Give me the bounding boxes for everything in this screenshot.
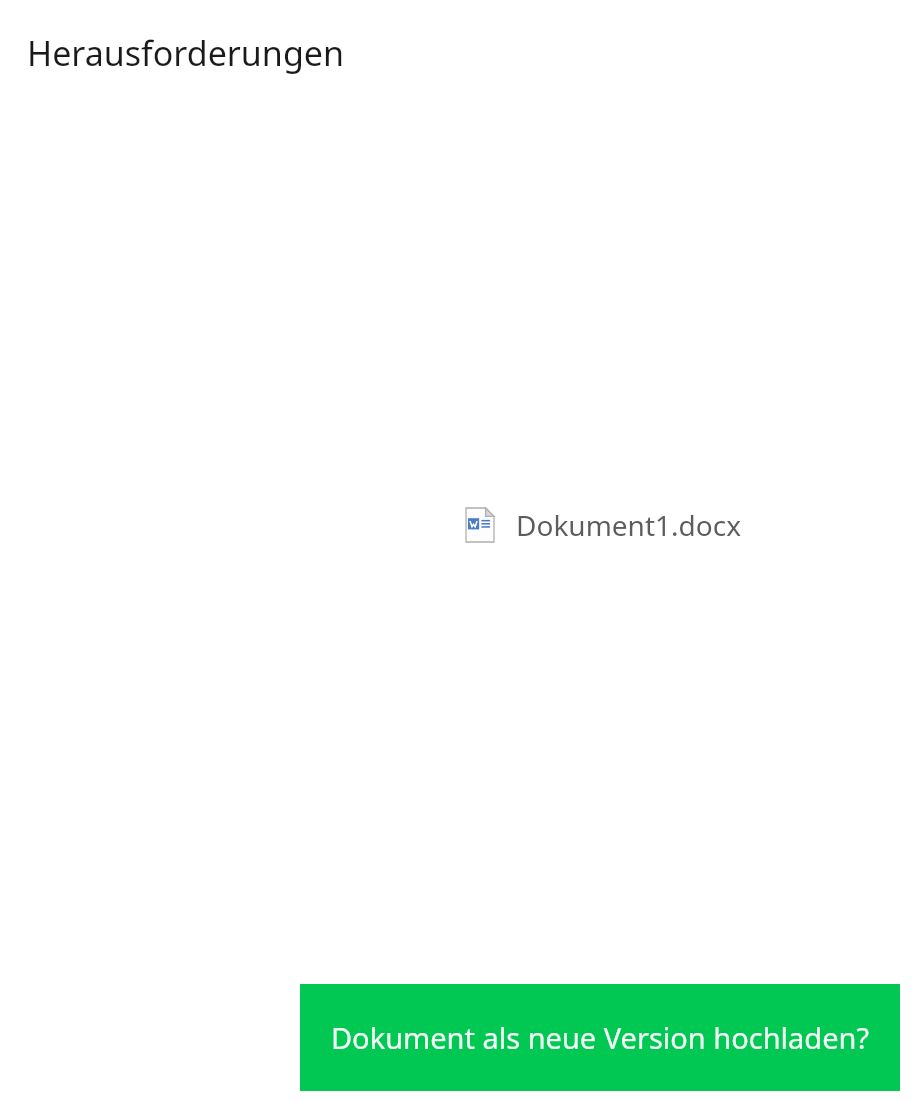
staticText: Dokument als neue Version hochladen? bbox=[300, 1018, 900, 1057]
other: Word-Dokument bbox=[466, 508, 494, 542]
staticText: Dokument1.docx bbox=[516, 506, 741, 544]
staticText: Herausforderungen bbox=[27, 30, 344, 76]
button[interactable]: Word-Dokument bbox=[460, 500, 747, 550]
button[interactable]: Dokument als neue Version hochladen? bbox=[300, 984, 900, 1091]
